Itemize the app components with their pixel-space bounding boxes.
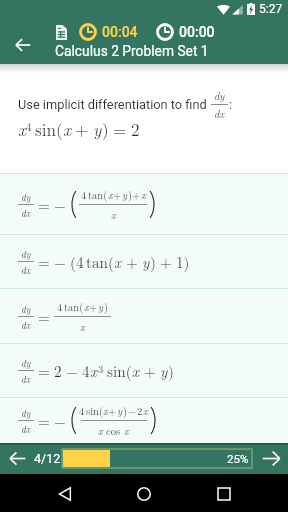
button[interactable]: Home	[125, 475, 162, 512]
staticText: x	[114, 251, 122, 273]
button[interactable]: Recent apps	[205, 475, 242, 512]
staticText: )	[123, 403, 128, 418]
staticText: sin(	[35, 117, 63, 141]
button[interactable]: Question timer	[79, 23, 97, 41]
staticText: +	[75, 117, 89, 141]
button[interactable]: dy	[0, 344, 288, 397]
staticText: y	[160, 360, 168, 382]
staticText: y	[98, 299, 104, 314]
staticText: dx	[21, 318, 31, 331]
staticText: sin(	[107, 360, 132, 382]
staticText: −	[54, 194, 66, 216]
button[interactable]: dy	[0, 289, 288, 343]
staticText: dy	[21, 302, 31, 315]
staticText: )	[104, 299, 109, 314]
staticText: =	[38, 251, 50, 273]
staticText: )	[150, 251, 156, 273]
staticText: dx	[21, 422, 31, 435]
staticText: x	[80, 319, 85, 334]
staticText: x	[18, 117, 26, 141]
staticText: =	[38, 360, 50, 382]
staticText: 2	[131, 117, 140, 141]
staticText: Calculus 2 Problem Set 1	[55, 43, 209, 59]
staticText: tan(	[88, 187, 108, 202]
staticText: dy	[214, 88, 225, 103]
staticText: x	[141, 187, 146, 202]
staticText: sin(	[86, 403, 103, 418]
staticText: x	[124, 423, 129, 438]
staticText: 5:27	[259, 2, 283, 16]
staticText: 4	[26, 119, 32, 135]
staticText: x	[132, 360, 140, 382]
staticText: +	[108, 403, 117, 418]
staticText: )	[168, 360, 174, 382]
button[interactable]: Back	[4, 26, 42, 64]
staticText: dy	[21, 190, 31, 203]
staticText: 00:00	[179, 24, 215, 40]
staticText: −	[54, 410, 66, 432]
staticText: −	[54, 251, 66, 273]
staticText: 00:04	[102, 24, 138, 40]
staticText: 2	[137, 403, 143, 418]
staticText: tan(	[86, 251, 114, 273]
staticText: 25%	[227, 452, 249, 465]
staticText: y	[117, 403, 123, 418]
staticText: 4	[81, 187, 87, 202]
staticText: y	[142, 251, 150, 273]
button[interactable]: Next question	[254, 443, 288, 474]
staticText: =	[38, 410, 50, 432]
staticText: dx	[21, 206, 31, 219]
staticText: cos	[106, 423, 121, 438]
button[interactable]: Back	[46, 475, 83, 512]
button[interactable]: dy	[0, 398, 288, 443]
staticText: +	[144, 360, 156, 382]
staticText: −	[66, 360, 78, 382]
button[interactable]: dy	[0, 235, 288, 288]
staticText: +	[113, 187, 122, 202]
staticText: 4/12	[34, 451, 61, 466]
staticText: dx	[21, 263, 31, 276]
staticText: x	[98, 423, 103, 438]
staticText: x	[111, 207, 116, 222]
staticText: x	[84, 299, 89, 314]
staticText: dy	[21, 356, 31, 369]
staticText: 1)	[176, 251, 190, 273]
staticText: dx	[21, 372, 31, 385]
button[interactable]: Previous question	[1, 443, 33, 474]
staticText: =	[113, 117, 127, 141]
staticText: x	[108, 187, 113, 202]
staticText: +	[89, 299, 98, 314]
staticText: dy	[21, 406, 31, 419]
staticText: dy	[21, 247, 31, 260]
staticText: )	[102, 117, 109, 141]
staticText: )+	[128, 187, 141, 202]
staticText: 4	[82, 360, 90, 382]
staticText: y	[93, 117, 102, 141]
staticText: x	[90, 360, 98, 382]
button[interactable]: dy	[0, 174, 288, 234]
staticText: 3	[98, 361, 104, 376]
staticText: Use implicit differentiation to find	[18, 97, 207, 112]
staticText: 4	[57, 299, 63, 314]
staticText: =	[38, 306, 50, 328]
staticText: :	[229, 97, 233, 112]
staticText: x	[143, 403, 148, 418]
staticText: tan(	[64, 299, 84, 314]
staticText: 2	[54, 360, 62, 382]
staticText: 4	[79, 403, 85, 418]
staticText: dx	[214, 106, 225, 121]
staticText: (4	[70, 251, 84, 273]
staticText: +	[160, 251, 172, 273]
staticText: y	[122, 187, 128, 202]
staticText: −	[128, 403, 137, 418]
staticText: x	[103, 403, 108, 418]
staticText: =	[38, 194, 50, 216]
staticText: x	[63, 117, 71, 141]
button[interactable]: Total timer	[156, 23, 174, 41]
staticText: +	[126, 251, 138, 273]
